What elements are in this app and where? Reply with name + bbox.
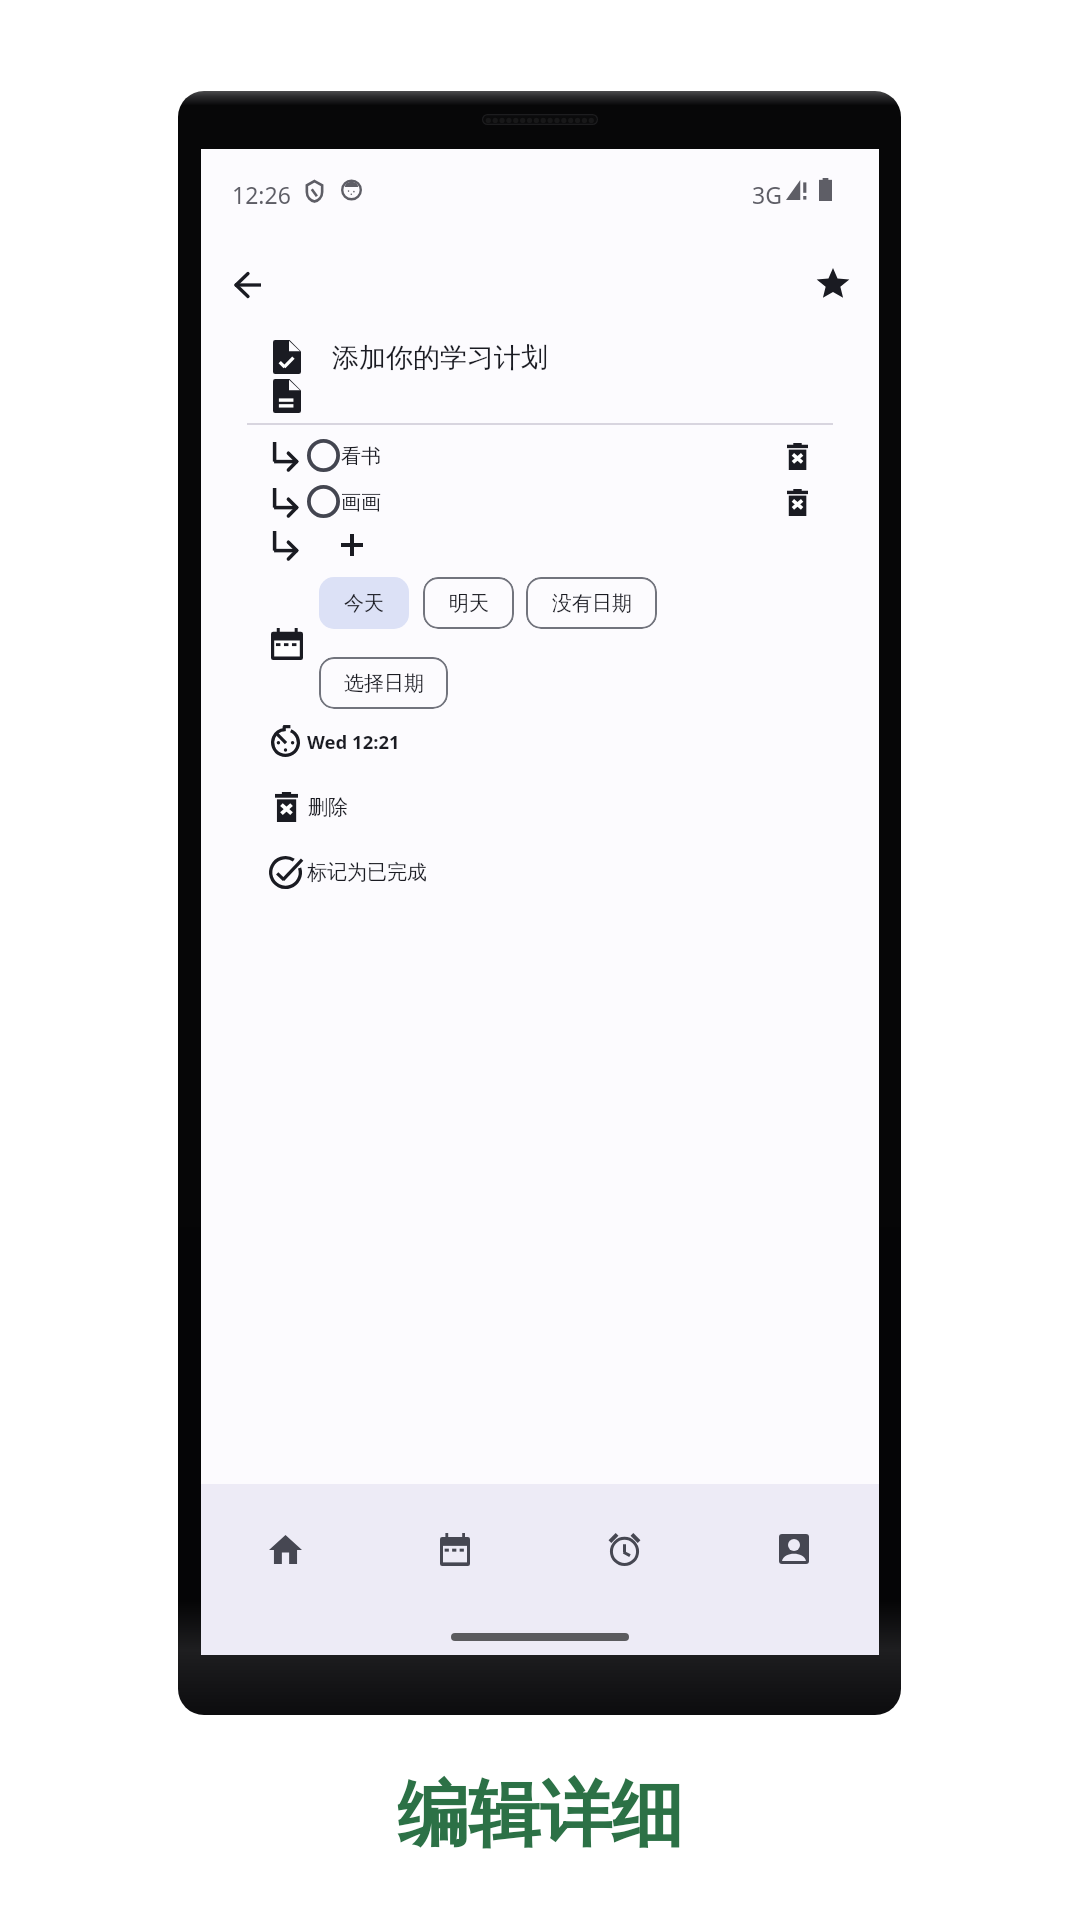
staticText: 没有日期 [552,591,632,616]
staticText: 删除 [308,795,348,820]
button[interactable]: 画画 [307,485,380,518]
button[interactable]: Back [223,260,272,309]
button[interactable]: Alarm [539,1518,709,1580]
button[interactable]: 今天 [319,577,409,629]
staticText: 添加你的学习计划 [332,341,548,375]
button[interactable]: Calendar [370,1518,539,1580]
button[interactable]: 明天 [423,577,514,629]
button[interactable]: 删除 [275,792,348,822]
staticText: 看书 [341,444,381,469]
staticText: 编辑详细 [397,1770,683,1860]
button[interactable]: Wed 12:21 [269,726,400,758]
button[interactable]: Favourite [808,259,857,308]
button[interactable]: Delete subtask [780,439,814,473]
button[interactable]: Home [201,1518,370,1580]
button[interactable]: Profile [709,1518,879,1580]
staticText: 明天 [449,591,489,616]
staticText: 今天 [344,591,384,616]
staticText: 画画 [341,490,381,515]
button[interactable]: Delete subtask [780,485,814,519]
staticText: 3G [752,179,782,210]
staticText: 12:26 [232,179,291,210]
button[interactable]: 选择日期 [319,657,448,709]
button[interactable]: 没有日期 [526,577,657,629]
button[interactable]: 看书 [307,439,380,472]
staticText: 选择日期 [344,671,424,696]
button[interactable]: Add subtask [334,527,370,563]
staticText: Wed 12:21 [307,729,400,754]
button[interactable]: 标记为已完成 [269,856,427,889]
staticText: 标记为已完成 [307,860,427,885]
